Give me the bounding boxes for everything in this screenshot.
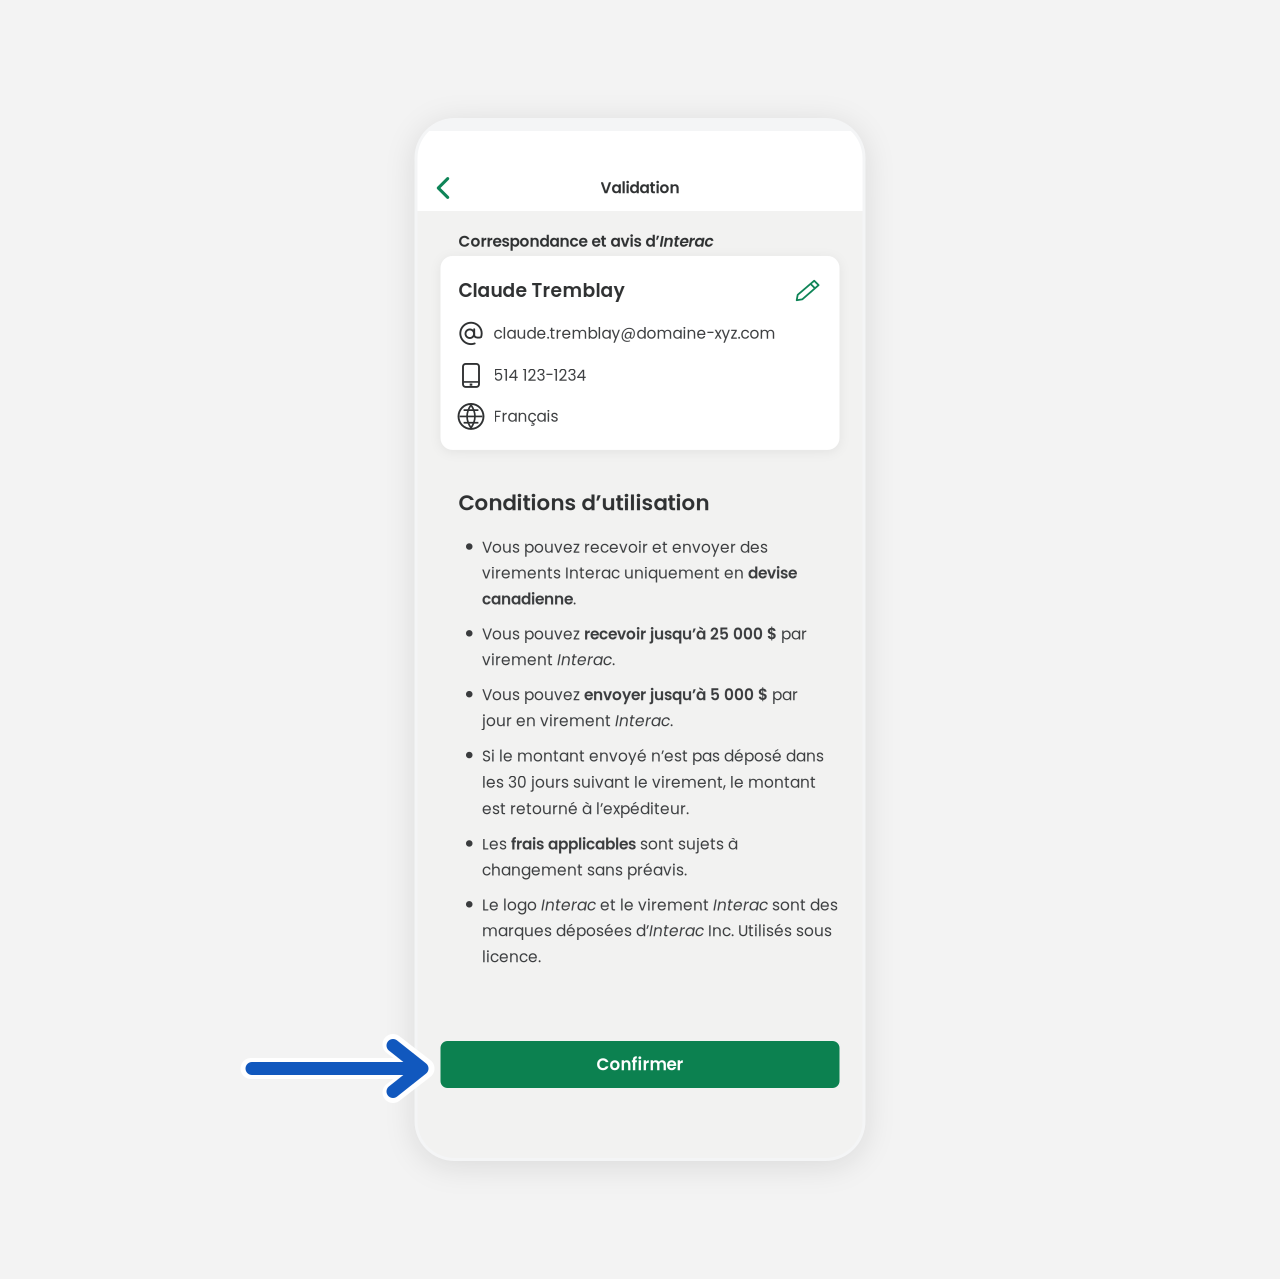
staticText: Vous pouvez recevoir jusqu’à 25 000 $ pa…	[482, 624, 807, 670]
staticText: Confirmer	[596, 1053, 683, 1076]
staticText: Correspondance et avis d’Interac	[458, 231, 713, 252]
staticText: Vous pouvez envoyer jusqu’à 5 000 $ par …	[482, 684, 798, 731]
staticText: Le logo Interac et le virement Interac s…	[482, 895, 838, 967]
staticText: Français	[493, 406, 558, 427]
staticText: Claude Tremblay	[458, 277, 624, 303]
button[interactable]: Back	[417, 166, 465, 210]
button[interactable]: Edit contact	[795, 279, 821, 301]
staticText: Les frais applicables sont sujets à chan…	[482, 834, 738, 881]
staticText: Conditions d’utilisation	[458, 488, 709, 518]
staticText: claude.tremblay@domaine-xyz.com	[493, 323, 775, 344]
staticText: Validation	[600, 177, 679, 199]
button[interactable]: Confirmer	[440, 1041, 839, 1088]
staticText: Si le montant envoyé n’est pas déposé da…	[482, 745, 824, 820]
staticText: 514 123-1234	[493, 365, 586, 386]
staticText: Vous pouvez recevoir et envoyer des vire…	[482, 537, 797, 610]
